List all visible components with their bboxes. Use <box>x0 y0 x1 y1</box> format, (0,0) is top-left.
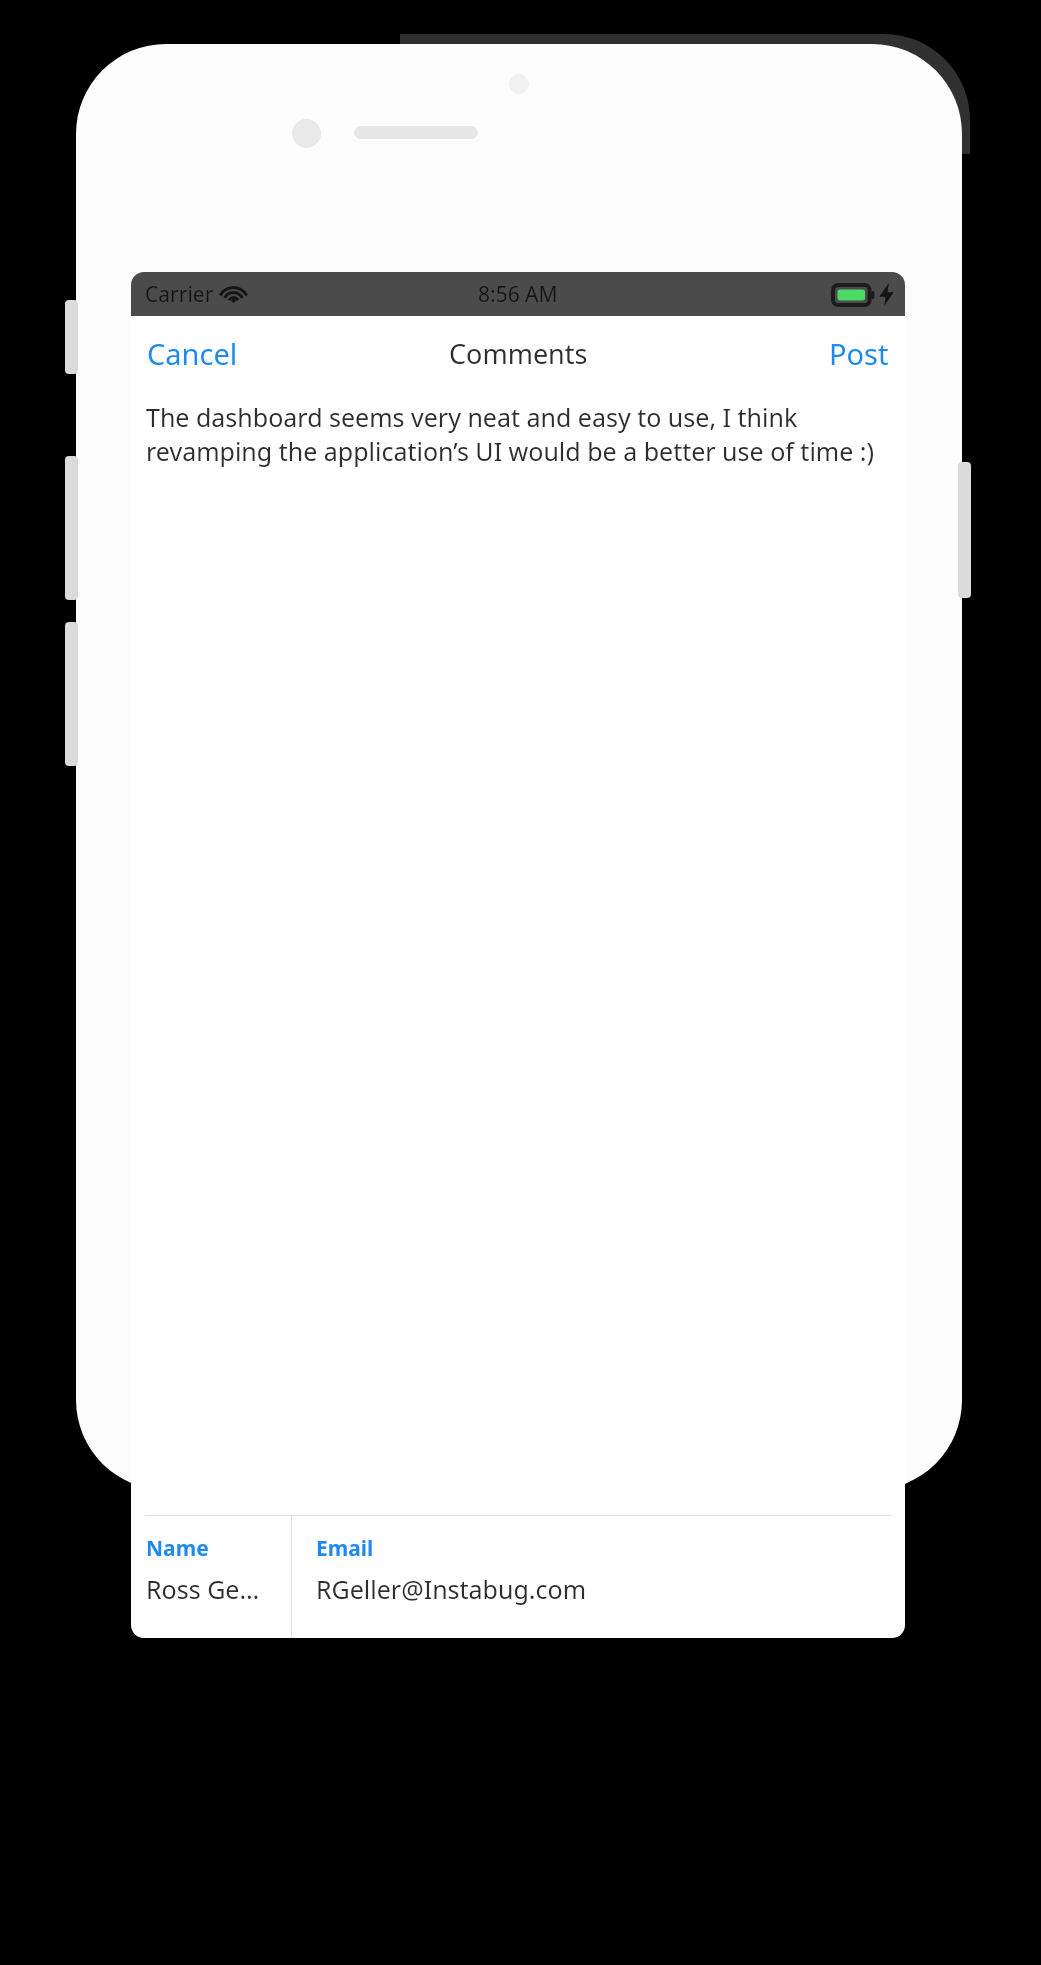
staticText: The dashboard seems very neat and easy t… <box>146 400 879 468</box>
button[interactable]: Cancel <box>135 324 250 383</box>
staticText: Email <box>316 1534 374 1563</box>
staticText: Comments <box>449 335 588 372</box>
button[interactable]: Name <box>131 1516 291 1638</box>
staticText: Name <box>146 1534 209 1563</box>
staticText: Cancel <box>147 334 238 373</box>
staticText: 8:56 AM <box>478 280 558 309</box>
button[interactable]: Post <box>817 324 901 383</box>
button[interactable]: Email <box>292 1516 905 1638</box>
staticText: RGeller@Instabug.com <box>316 1572 587 1606</box>
staticText: Post <box>829 334 889 373</box>
staticText: Ross Ge… <box>146 1572 260 1606</box>
staticText: Carrier <box>145 280 214 309</box>
